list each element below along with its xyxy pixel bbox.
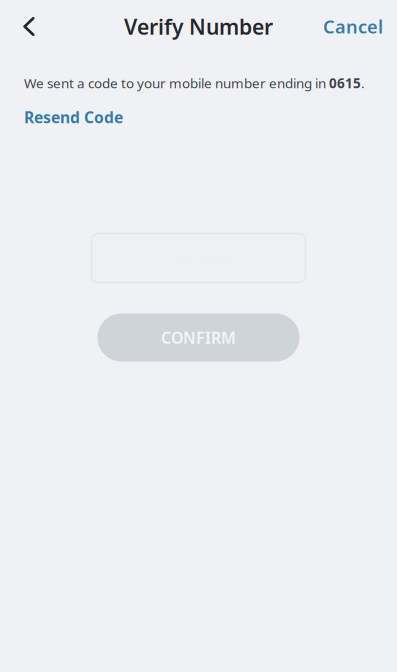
button[interactable]: CONFIRM	[97, 313, 299, 361]
staticText: Verify Number	[124, 12, 273, 40]
staticText: CONFIRM	[161, 327, 236, 348]
button[interactable]: Resend Code	[0, 92, 137, 135]
staticText: Cancel	[323, 14, 383, 39]
staticText: Resend Code	[24, 107, 123, 127]
button[interactable]: Cancel	[309, 5, 397, 48]
staticText: We sent a code to your mobile number end…	[24, 74, 365, 92]
button[interactable]: Back	[0, 8, 48, 45]
